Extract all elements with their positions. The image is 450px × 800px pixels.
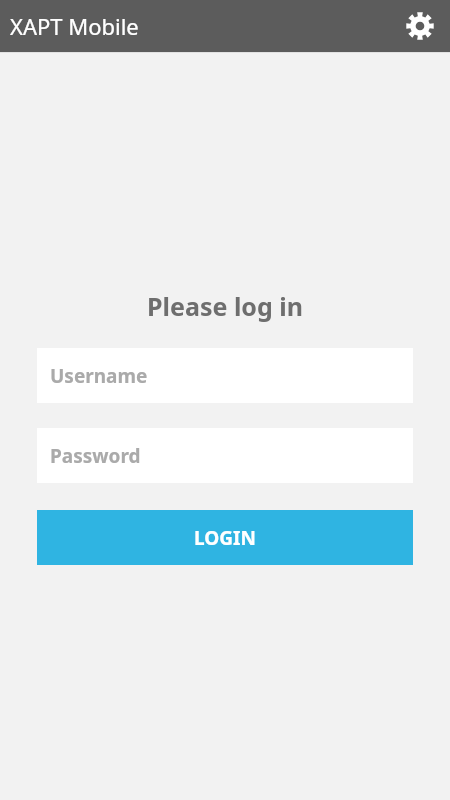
staticText: Username	[50, 363, 148, 389]
button[interactable]: LOGIN	[37, 510, 413, 565]
staticText: Password	[50, 443, 141, 469]
button[interactable]: Password	[37, 428, 413, 483]
button[interactable]: Settings	[402, 8, 438, 44]
button[interactable]: Username	[37, 348, 413, 403]
staticText: Please log in	[147, 289, 303, 323]
staticText: LOGIN	[194, 525, 256, 551]
staticText: XAPT Mobile	[10, 11, 139, 41]
